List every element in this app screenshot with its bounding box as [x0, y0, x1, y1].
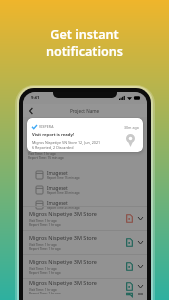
button[interactable]: Imageset [23, 182, 147, 197]
staticText: Visit Time: 1 hr ago [29, 288, 57, 292]
button[interactable]: Migros Nispetiye 3M Store [23, 231, 147, 254]
button[interactable]: Back [25, 105, 36, 116]
staticText: Visit report is ready! [32, 132, 75, 138]
staticText: Migros Nispetiye 3M Store [29, 279, 97, 286]
staticText: Report Time 15 min ago [47, 176, 80, 180]
staticText: Visit Time: 1 hr ago [29, 267, 57, 271]
staticText: Visit Time: 1 hr ago [29, 243, 57, 247]
button[interactable]: VISPERA [27, 118, 143, 152]
staticText: Imageset [47, 170, 68, 176]
button[interactable]: Migros Nispetiye 3M Store [23, 207, 147, 230]
staticText: VISPERA [39, 124, 54, 129]
staticText: 6 Reported, 2 Discarded [32, 145, 74, 150]
staticText: Report Time: 1 hr ago [29, 271, 61, 275]
staticText: Report Time: 1 hr ago [29, 292, 61, 294]
staticText: Project Name [70, 108, 100, 114]
staticText: Imageset [47, 200, 68, 206]
staticText: Get instant notifications [0, 26, 169, 60]
staticText: Migros Nispetiye 5N Store 12, Jun, 2021 [32, 140, 101, 145]
staticText: Migros Nispetiye 3M Store [29, 210, 97, 217]
button[interactable]: Migros Nispetiye 3M Store [23, 255, 147, 278]
button[interactable]: Migros Nispetiye 3M Store [23, 279, 147, 294]
staticText: 9:41 [31, 95, 40, 101]
button[interactable]: Imageset [23, 167, 147, 182]
staticText: Report Time: 15 min ago [28, 156, 64, 160]
button[interactable]: Imageset [23, 197, 147, 212]
staticText: Visit Time: 1 hr ago [28, 152, 56, 156]
staticText: Report Time 45 min ago [47, 206, 80, 210]
staticText: Migros Nispetiye 3M Store [29, 258, 97, 265]
staticText: Migros Nispetiye 3M Store [29, 234, 97, 241]
staticText: Visit Time: 1 hr ago [29, 219, 57, 223]
staticText: 30m ago [124, 125, 139, 130]
staticText: Imageset [47, 185, 68, 191]
staticText: Report Time 30 min ago [47, 191, 80, 195]
staticText: Report Time: 1 hr ago [29, 223, 61, 227]
staticText: Report Time: 1 hr ago [29, 247, 61, 251]
